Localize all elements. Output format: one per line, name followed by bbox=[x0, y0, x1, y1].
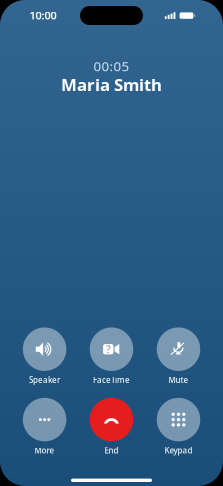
staticText: More bbox=[35, 445, 55, 456]
staticText: End bbox=[104, 445, 118, 456]
button[interactable]: Mute bbox=[148, 325, 208, 402]
button[interactable]: Speaker bbox=[15, 325, 75, 402]
staticText: FaceTime bbox=[93, 375, 130, 385]
staticText: 10:00 bbox=[29, 8, 56, 23]
staticText: Mute bbox=[168, 375, 188, 385]
button[interactable]: End bbox=[81, 396, 141, 472]
staticText: Speaker bbox=[29, 375, 60, 385]
staticText: Keypad bbox=[164, 445, 192, 456]
staticText: Maria Smith bbox=[61, 73, 162, 96]
staticText: 00:05 bbox=[93, 57, 129, 75]
button[interactable]: ? bbox=[81, 325, 141, 402]
button[interactable]: Keypad bbox=[148, 396, 208, 472]
button[interactable]: More bbox=[15, 396, 75, 472]
staticText: ? bbox=[106, 342, 111, 356]
